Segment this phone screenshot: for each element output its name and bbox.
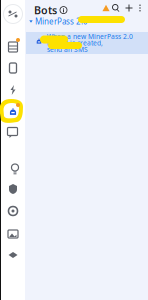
button[interactable]: More options (136, 4, 144, 12)
staticText: MinerPass 2.0 (35, 16, 88, 27)
button[interactable]: Search (112, 4, 120, 12)
staticText: Bots (34, 3, 57, 17)
button[interactable]: Security (4, 180, 22, 198)
button[interactable]: Records (4, 38, 22, 56)
button[interactable]: Workspace (2, 3, 24, 25)
button[interactable]: Ideas (4, 158, 22, 176)
staticText: When a new MinerPass 2.0 (47, 32, 133, 41)
button[interactable]: When a new MinerPass 2.0 (26, 32, 148, 54)
button[interactable]: Integrations (4, 247, 22, 265)
button[interactable]: Media (4, 225, 22, 243)
button[interactable]: Warnings (102, 4, 110, 12)
button[interactable]: New bot (125, 4, 133, 12)
staticText: record is created, (47, 38, 103, 47)
button[interactable]: MinerPass 2.0 (29, 16, 88, 27)
button[interactable]: Bots (4, 103, 22, 121)
button[interactable]: Messages (4, 124, 22, 142)
button[interactable]: Bots (34, 3, 67, 17)
button[interactable]: Devices (4, 59, 22, 77)
button[interactable]: Automations (4, 81, 22, 99)
button[interactable]: Settings (4, 202, 22, 220)
staticText: send an SMS (47, 45, 88, 54)
